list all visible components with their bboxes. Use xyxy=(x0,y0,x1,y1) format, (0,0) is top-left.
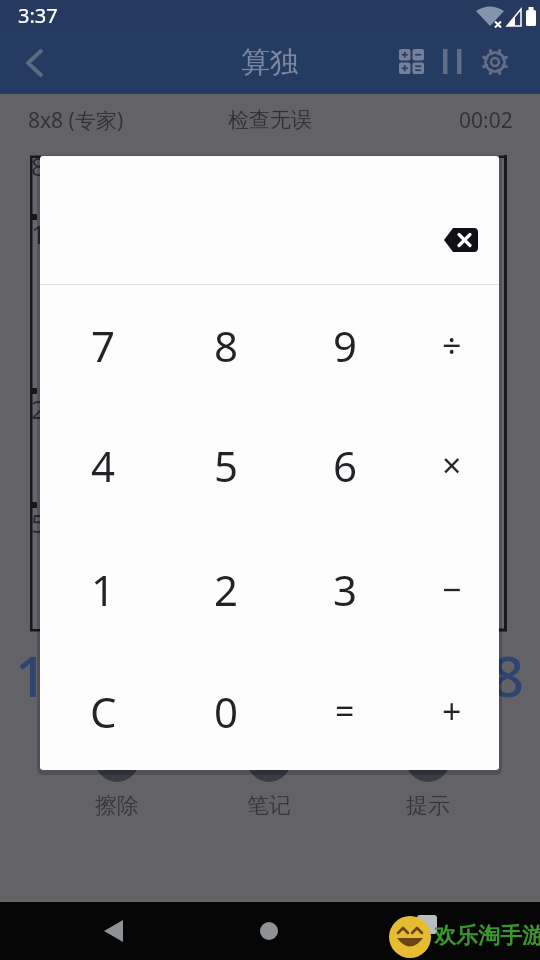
button[interactable]: 2 xyxy=(171,530,281,648)
staticText: 3:37 xyxy=(18,2,58,29)
button[interactable]: C xyxy=(48,652,158,770)
staticText: 1 xyxy=(15,637,48,707)
staticText: 2 xyxy=(31,391,46,425)
staticText: 欢乐淘手游 xyxy=(434,922,540,950)
button[interactable]: 5 xyxy=(171,406,281,524)
staticText: C xyxy=(90,683,117,740)
button[interactable]: = xyxy=(290,652,400,770)
button[interactable]: 擦除 xyxy=(62,789,172,823)
staticText: 7 xyxy=(91,317,116,374)
staticText: 2 xyxy=(214,561,239,618)
button[interactable] xyxy=(249,911,289,951)
staticText: + xyxy=(442,688,462,734)
button[interactable]: 6 xyxy=(290,406,400,524)
staticText: 8x8 (专家) xyxy=(28,106,124,135)
button[interactable]: ÷ xyxy=(397,286,499,404)
staticText: ÷ xyxy=(442,322,462,368)
staticText: 5 xyxy=(214,437,239,494)
button[interactable]: × xyxy=(397,406,499,524)
staticText: 擦除 xyxy=(95,792,139,820)
button[interactable]: 8 xyxy=(171,286,281,404)
staticText: 6 xyxy=(333,437,358,494)
button[interactable]: 提示 xyxy=(373,789,483,823)
button[interactable]: 0 xyxy=(171,652,281,770)
button[interactable]: 笔记 xyxy=(214,789,324,823)
button[interactable]: 4 xyxy=(48,406,158,524)
staticText: − xyxy=(442,566,462,612)
staticText: 4 xyxy=(91,437,116,494)
staticText: 1 xyxy=(91,561,116,618)
button[interactable]: 1 xyxy=(48,530,158,648)
button[interactable]: − xyxy=(397,530,499,648)
staticText: 8 xyxy=(214,317,239,374)
button[interactable] xyxy=(438,218,484,262)
button[interactable]: 3 xyxy=(290,530,400,648)
staticText: 8 xyxy=(31,148,46,182)
staticText: 笔记 xyxy=(247,792,291,820)
button[interactable]: + xyxy=(397,652,499,770)
button[interactable]: 9 xyxy=(290,286,400,404)
button[interactable] xyxy=(393,45,429,81)
button[interactable] xyxy=(14,42,58,82)
staticText: 8 xyxy=(492,637,525,707)
staticText: 检查无误 xyxy=(228,107,312,133)
button[interactable] xyxy=(477,44,513,80)
staticText: 提示 xyxy=(406,792,450,820)
button[interactable]: 7 xyxy=(48,286,158,404)
staticText: 5 xyxy=(31,505,46,539)
staticText: 9 xyxy=(333,317,358,374)
staticText: 3 xyxy=(333,561,358,618)
staticText: × xyxy=(442,442,462,488)
staticText: = xyxy=(335,688,355,734)
button[interactable] xyxy=(437,44,467,80)
staticText: 0 xyxy=(214,683,239,740)
button[interactable] xyxy=(95,911,135,951)
staticText: 00:02 xyxy=(459,106,513,135)
staticText: 算独 xyxy=(241,44,299,81)
staticText: 1 xyxy=(31,216,46,250)
